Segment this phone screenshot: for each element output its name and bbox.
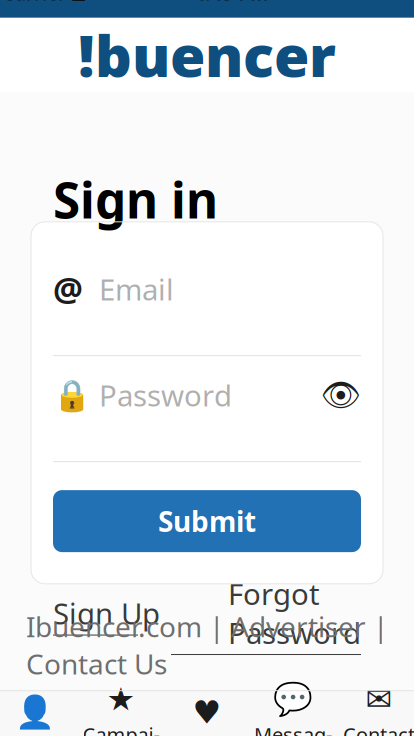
staticText: 🔒 bbox=[53, 378, 91, 413]
button[interactable]: Show password bbox=[321, 375, 361, 415]
staticText: ★ bbox=[106, 681, 135, 717]
staticText: Forgot Password bbox=[228, 574, 361, 652]
staticText: Campaigns bbox=[82, 721, 159, 736]
button[interactable]: Sign Up bbox=[53, 594, 160, 636]
staticText: Sign Up bbox=[53, 594, 160, 633]
staticText: ▲ bbox=[72, 0, 85, 3]
staticText: 👁 bbox=[320, 377, 361, 413]
staticText: @ bbox=[53, 267, 83, 311]
staticText: 💬 bbox=[273, 681, 313, 717]
staticText: 4:45 PM bbox=[194, 0, 269, 6]
staticText: Password bbox=[99, 376, 232, 415]
staticText: 👤 bbox=[15, 694, 55, 731]
button[interactable]: 👤 bbox=[0, 694, 74, 736]
button[interactable]: ✉ bbox=[340, 694, 414, 736]
staticText: ✉ bbox=[365, 681, 392, 717]
button[interactable]: Forgot Password bbox=[171, 574, 361, 655]
staticText: !buencer bbox=[78, 17, 336, 93]
staticText: Carrier bbox=[2, 0, 66, 6]
staticText: Ibuencer.com | Advertiser | Contact Us bbox=[26, 608, 388, 682]
staticText: Contact Us bbox=[343, 721, 414, 736]
button[interactable]: Submit bbox=[53, 490, 361, 552]
staticText: Submit bbox=[158, 502, 256, 540]
staticText: Sign in bbox=[53, 167, 218, 232]
staticText: ♥ bbox=[192, 694, 221, 730]
button[interactable]: ♥ bbox=[168, 694, 246, 736]
button[interactable]: 💬 bbox=[254, 694, 332, 736]
button[interactable]: ★ bbox=[82, 694, 160, 736]
staticText: Message bbox=[254, 721, 332, 736]
staticText: Email bbox=[99, 270, 174, 309]
